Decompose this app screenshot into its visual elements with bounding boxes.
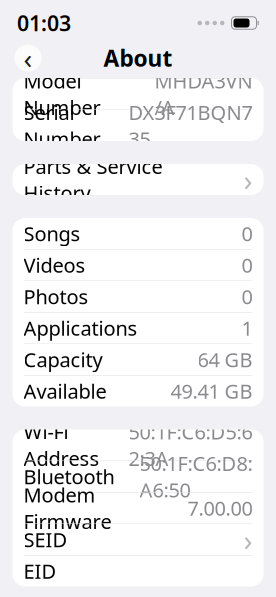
button[interactable]: Available <box>12 375 263 406</box>
button[interactable]: Back <box>11 41 45 75</box>
button[interactable]: Videos <box>12 249 263 280</box>
staticText: Bluetooth <box>23 463 114 490</box>
staticText: ‹ <box>23 39 32 77</box>
button[interactable]: Photos <box>12 281 263 312</box>
staticText: 50:1F:C6:D5:62:3A <box>128 418 252 471</box>
button[interactable]: Wi-Fi Address <box>12 429 263 460</box>
staticText: MHDA3VN/A <box>154 67 252 120</box>
button[interactable]: EID <box>12 555 263 586</box>
staticText: › <box>243 520 252 559</box>
staticText: SEID <box>23 526 67 553</box>
button[interactable]: Songs <box>12 218 263 249</box>
staticText: Songs <box>23 220 80 247</box>
staticText: Modem Firmware <box>23 481 111 534</box>
button[interactable]: Model Number <box>12 78 263 109</box>
staticText: 49.41 GB <box>170 378 252 404</box>
staticText: 01:03 <box>17 9 71 37</box>
staticText: › <box>243 160 252 199</box>
staticText: 0 <box>241 252 252 278</box>
button[interactable]: Bluetooth <box>12 461 263 492</box>
button[interactable]: SEID <box>12 524 263 555</box>
button[interactable]: Applications <box>12 312 263 343</box>
button[interactable]: Serial Number <box>12 110 263 141</box>
staticText: About <box>103 43 172 73</box>
staticText: Wi-Fi Address <box>23 418 99 471</box>
staticText: Videos <box>23 252 85 278</box>
staticText: Photos <box>23 283 88 310</box>
button[interactable]: Capacity <box>12 344 263 375</box>
staticText: 0 <box>241 220 252 247</box>
staticText: Parts & Service History <box>23 153 162 206</box>
staticText: 0 <box>241 283 252 310</box>
staticText: Available <box>23 378 106 404</box>
staticText: 64 GB <box>197 346 252 373</box>
staticText: Serial Number <box>23 99 100 152</box>
button[interactable]: Modem Firmware <box>12 492 263 523</box>
staticText: Model Number <box>23 67 100 120</box>
staticText: 1 <box>241 315 252 341</box>
staticText: Applications <box>23 315 137 341</box>
staticText: 50:1F:C6:D8:A6:50 <box>139 450 252 503</box>
staticText: Capacity <box>23 346 102 373</box>
button[interactable]: Parts & Service History <box>12 164 263 195</box>
staticText: 7.00.00 <box>187 495 252 521</box>
staticText: EID <box>23 558 56 584</box>
staticText: DX3F71BQN735 <box>128 99 252 152</box>
